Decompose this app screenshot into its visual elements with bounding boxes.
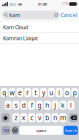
button[interactable]: y: [40, 88, 47, 97]
staticText: d: [22, 101, 26, 110]
button[interactable]: s: [12, 101, 19, 110]
staticText: z: [14, 113, 17, 122]
button[interactable]: g: [36, 101, 43, 110]
staticText: b: [45, 113, 49, 122]
button[interactable]: Delete: [69, 113, 78, 122]
staticText: v: [38, 113, 41, 122]
staticText: n: [53, 113, 57, 122]
button[interactable]: m: [60, 113, 66, 122]
button[interactable]: l: [67, 101, 74, 110]
staticText: Cancel: [60, 11, 76, 19]
button[interactable]: d: [20, 101, 27, 110]
staticText: f: [31, 101, 33, 110]
staticText: p: [73, 88, 77, 97]
staticText: x: [22, 113, 26, 122]
staticText: u: [49, 88, 53, 97]
button[interactable]: u: [48, 88, 55, 97]
button[interactable]: 123: [1, 126, 11, 135]
staticText: 01:48: [38, 1, 47, 7]
button[interactable]: n: [52, 113, 59, 122]
button[interactable]: j: [52, 101, 59, 110]
staticText: e: [18, 88, 22, 97]
staticText: space: [36, 128, 46, 133]
staticText: w: [9, 88, 14, 97]
staticText: r: [26, 88, 29, 97]
button[interactable]: z: [12, 113, 19, 122]
button[interactable]: e: [16, 88, 23, 97]
button[interactable]: o: [63, 88, 70, 97]
staticText: s: [14, 101, 17, 110]
staticText: Jazz: [10, 1, 17, 7]
staticText: o: [65, 88, 69, 97]
staticText: g: [37, 101, 41, 110]
staticText: j: [54, 101, 56, 110]
button[interactable]: r: [24, 88, 31, 97]
button[interactable]: t: [32, 88, 39, 97]
button[interactable]: v: [36, 113, 43, 122]
staticText: Search: [65, 128, 77, 133]
button[interactable]: space: [19, 126, 63, 135]
button[interactable]: Kamran Liaqat: [0, 33, 79, 44]
staticText: q: [2, 88, 6, 97]
staticText: y: [42, 88, 45, 97]
button[interactable]: Cancel: [60, 11, 77, 19]
button[interactable]: c: [28, 113, 35, 122]
staticText: l: [70, 101, 72, 110]
button[interactable]: Search: [64, 126, 78, 135]
button[interactable]: p: [71, 88, 78, 97]
button[interactable]: i: [56, 88, 63, 97]
staticText: h: [45, 101, 49, 110]
button[interactable]: q: [1, 88, 8, 97]
staticText: t: [35, 88, 37, 97]
staticText: 57%: [62, 2, 68, 6]
button[interactable]: h: [44, 101, 51, 110]
staticText: k: [61, 101, 65, 110]
button[interactable]: b: [44, 113, 51, 122]
staticText: a: [6, 101, 10, 110]
staticText: Kam Cloud: [3, 24, 28, 31]
staticText: c: [30, 113, 33, 122]
button[interactable]: Clear text: [54, 13, 58, 17]
button[interactable]: Next keyboard: [11, 126, 18, 135]
button[interactable]: w: [9, 88, 15, 97]
staticText: 123: [3, 128, 9, 133]
staticText: i: [58, 88, 60, 97]
button[interactable]: k: [60, 101, 66, 110]
button[interactable]: a: [5, 101, 11, 110]
staticText: m: [60, 113, 66, 122]
staticText: Kamran Liaqat: [3, 35, 38, 42]
button[interactable]: Shift: [1, 113, 10, 122]
button[interactable]: x: [20, 113, 27, 122]
staticText: kam: [9, 11, 20, 19]
button[interactable]: Kam Cloud: [0, 22, 79, 33]
button[interactable]: f: [28, 101, 35, 110]
